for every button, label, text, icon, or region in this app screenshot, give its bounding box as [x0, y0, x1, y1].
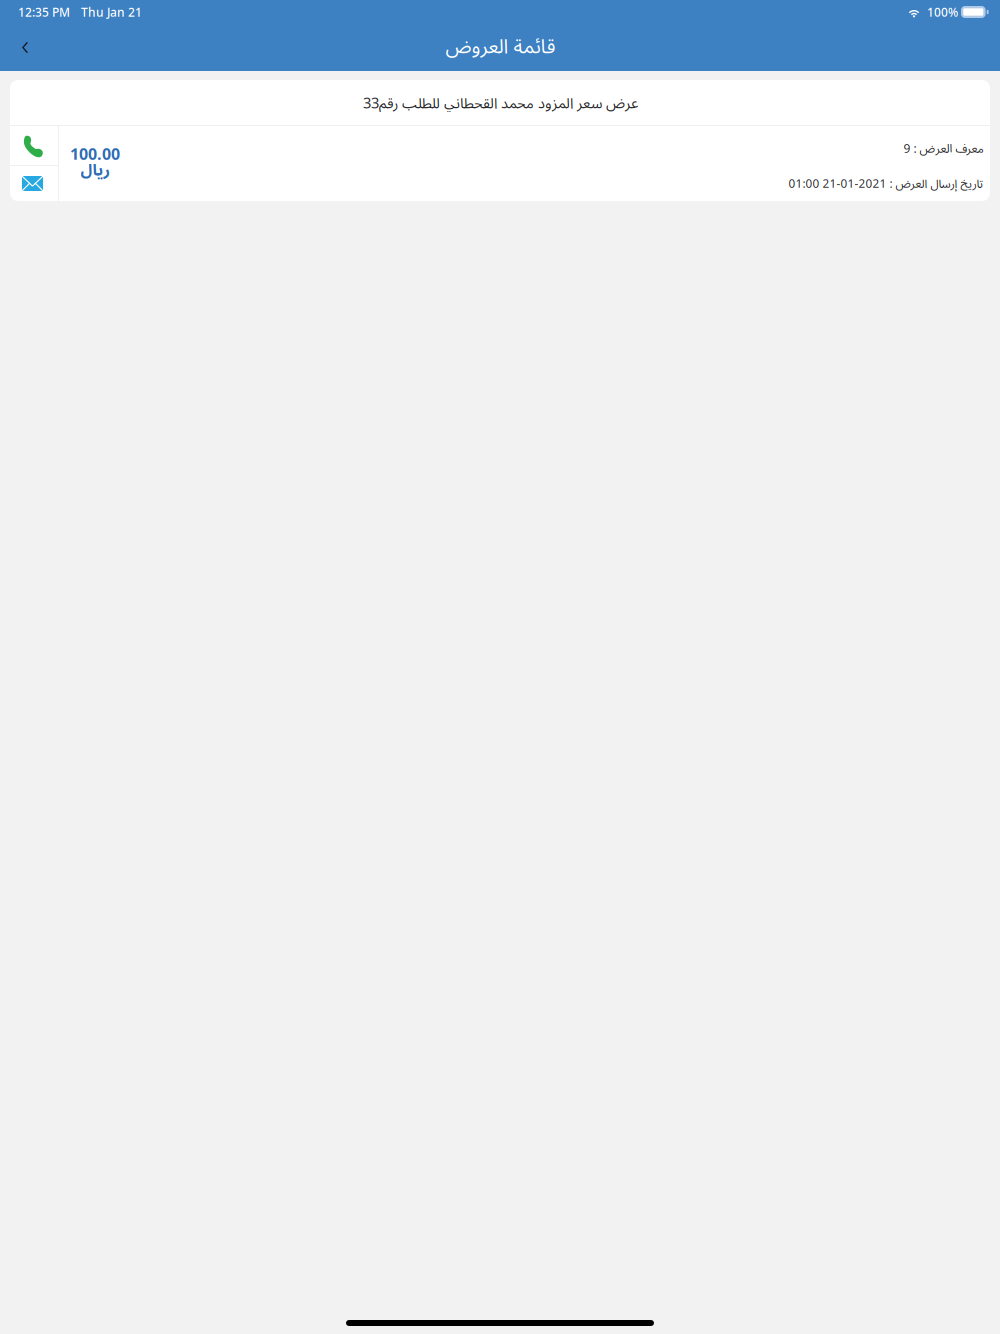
button[interactable]: Call supplier [10, 126, 58, 165]
staticText: تاريخ إرسال العرض : 2021-01-21 01:00 [788, 175, 983, 191]
staticText: 12:35 PM [18, 4, 70, 20]
staticText: 100% [927, 4, 958, 20]
staticText: 100.00 [70, 143, 120, 164]
button[interactable]: Back [0, 24, 44, 71]
staticText: Thu Jan 21 [81, 4, 142, 20]
staticText: عرض سعر المزود محمد القحطاني للطلب رقم33 [362, 92, 637, 112]
button[interactable]: Email supplier [10, 166, 58, 201]
staticText: معرف العرض : 9 [903, 140, 983, 156]
staticText: قائمة العروض [445, 32, 555, 59]
staticText: ريال [80, 158, 110, 180]
